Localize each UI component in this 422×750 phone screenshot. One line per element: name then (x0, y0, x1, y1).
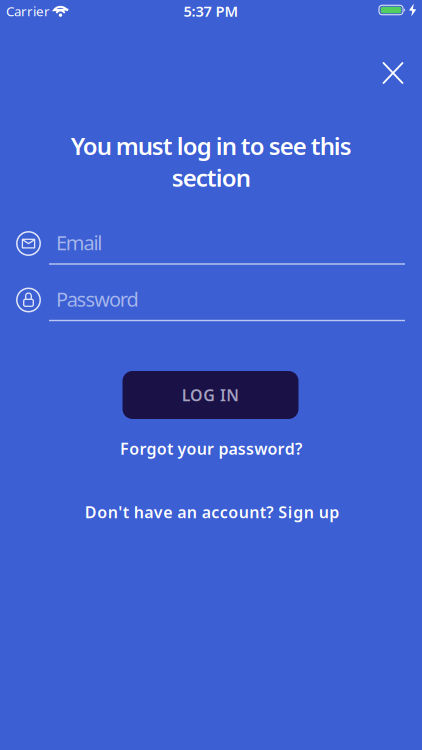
staticText: Email (56, 229, 102, 256)
staticText: Password (56, 286, 139, 312)
textField[interactable]: Email (15, 222, 406, 266)
button[interactable]: LOG IN (122, 371, 298, 419)
staticText: 5:37 PM (183, 1, 238, 21)
button[interactable]: Close (378, 58, 408, 88)
staticText: LOG IN (182, 384, 239, 406)
button[interactable]: Don't have an account? Sign up (76, 500, 348, 524)
button[interactable]: Forgot your password? (111, 436, 311, 460)
staticText: Carrier (6, 2, 50, 20)
staticText: Forgot your password? (120, 438, 302, 459)
staticText: Don't have an account? Sign up (85, 501, 339, 523)
staticText: You must log in to see this section (70, 130, 351, 193)
secureTextField[interactable]: Password (15, 278, 406, 322)
